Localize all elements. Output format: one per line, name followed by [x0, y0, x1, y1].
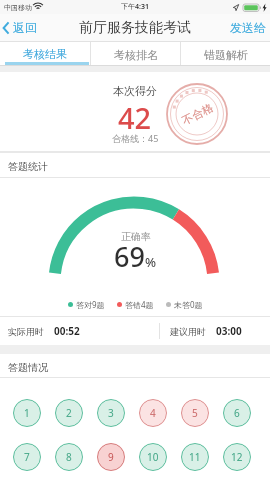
staticText: 答错4题	[125, 299, 154, 310]
staticText: 4	[150, 406, 156, 420]
button[interactable]: 4	[139, 399, 167, 427]
staticText: 69	[114, 238, 145, 275]
staticText: 3	[108, 406, 114, 420]
button[interactable]: 12	[223, 443, 251, 471]
staticText: 合格线：45	[112, 132, 159, 144]
staticText: 下午4:31	[121, 2, 149, 12]
staticText: 答题情况	[8, 361, 48, 374]
staticText: 实际用时	[8, 326, 44, 337]
button[interactable]: 1	[13, 399, 41, 427]
staticText: 42	[118, 98, 152, 132]
staticText: 不合格	[180, 100, 215, 128]
staticText: 00:52	[54, 324, 80, 338]
staticText: 返回	[13, 20, 37, 35]
staticText: 前厅服务技能考试	[79, 19, 191, 37]
button[interactable]: 11	[181, 443, 209, 471]
staticText: 错题解析	[204, 48, 248, 62]
button[interactable]: 考核排名	[91, 45, 180, 65]
staticText: 7	[24, 450, 30, 464]
button[interactable]: 9	[97, 443, 125, 471]
staticText: 1	[24, 406, 30, 420]
staticText: 03:00	[216, 324, 242, 338]
button[interactable]: 考核结果	[0, 42, 90, 65]
staticText: 9	[108, 450, 114, 464]
button[interactable]: 5	[181, 399, 209, 427]
button[interactable]: 10	[139, 443, 167, 471]
staticText: %	[145, 253, 157, 271]
staticText: 12	[231, 450, 243, 464]
button[interactable]: 3	[97, 399, 125, 427]
button[interactable]: 7	[13, 443, 41, 471]
staticText: 未答0题	[174, 299, 203, 310]
staticText: 10	[147, 450, 159, 464]
staticText: 建议用时	[170, 326, 206, 337]
button[interactable]: 6	[223, 399, 251, 427]
staticText: 本次得分	[113, 84, 157, 98]
staticText: 8	[66, 450, 72, 464]
staticText: 2	[66, 406, 72, 420]
staticText: 中国移动	[4, 3, 32, 12]
staticText: 6	[234, 406, 240, 420]
staticText: 5	[192, 406, 198, 420]
staticText: 答对9题	[76, 299, 105, 310]
button[interactable]: 错题解析	[181, 45, 270, 65]
staticText: 发送给	[230, 20, 266, 35]
staticText: 11	[189, 450, 201, 464]
button[interactable]: 返回	[2, 20, 37, 35]
button[interactable]: 发送给	[230, 20, 266, 35]
button[interactable]: 2	[55, 399, 83, 427]
staticText: 答题统计	[8, 160, 48, 173]
staticText: 考核排名	[114, 48, 158, 62]
staticText: 正确率	[121, 230, 151, 243]
button[interactable]: 8	[55, 443, 83, 471]
staticText: 考核结果	[23, 47, 67, 61]
